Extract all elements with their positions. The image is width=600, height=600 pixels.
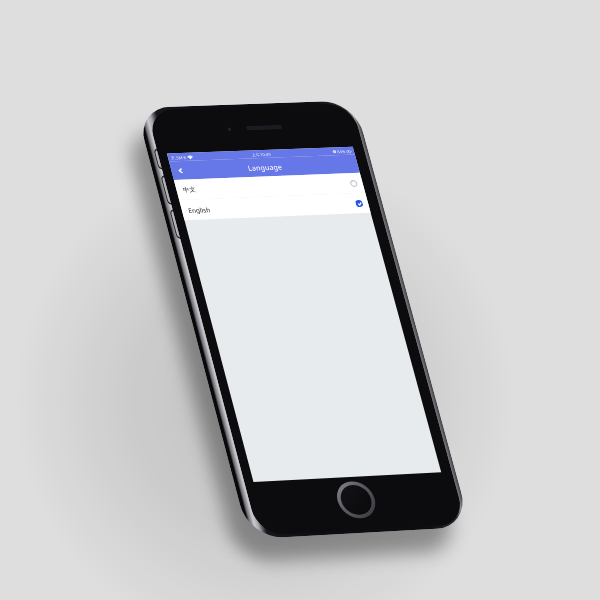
button[interactable]: 中文 xyxy=(174,173,365,200)
button[interactable]: English xyxy=(179,193,371,220)
staticText: 64% xyxy=(336,149,347,154)
staticText: Language xyxy=(246,162,283,173)
button[interactable]: Back xyxy=(169,162,191,179)
staticText: 中文 xyxy=(182,179,351,194)
staticText: 天.SM卡 xyxy=(170,155,188,160)
staticText: English xyxy=(187,199,357,215)
staticText: 上午10:49 xyxy=(251,151,272,157)
